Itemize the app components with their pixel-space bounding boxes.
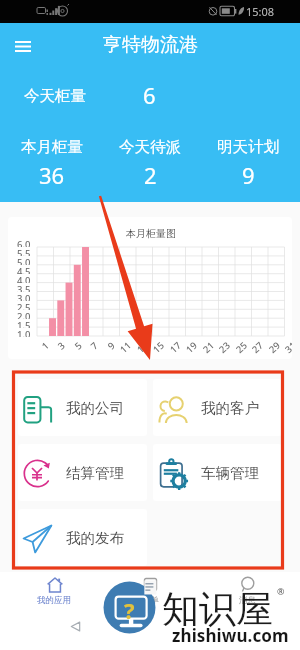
staticText: 订单 bbox=[142, 595, 159, 606]
staticText: 知识屋 bbox=[162, 586, 273, 633]
staticText: 31 bbox=[282, 339, 292, 356]
staticText: 5 bbox=[72, 339, 85, 353]
staticText: 明天计划 bbox=[217, 137, 279, 157]
staticText: 亨特物流港 bbox=[103, 33, 198, 57]
other: Back bbox=[70, 621, 81, 632]
staticText: 21 bbox=[200, 339, 217, 356]
staticText: 6.0 bbox=[17, 238, 31, 247]
staticText: 15 bbox=[150, 339, 167, 356]
button[interactable]: 我的发布 bbox=[18, 509, 147, 566]
staticText: 23 bbox=[216, 339, 233, 356]
button[interactable]: Menu bbox=[6, 29, 40, 63]
button[interactable]: 消息 bbox=[204, 572, 290, 612]
staticText: 13 bbox=[134, 339, 151, 356]
staticText: 本月柜量 bbox=[21, 137, 83, 157]
staticText: 17 bbox=[167, 339, 184, 356]
button[interactable]: 订单 bbox=[107, 572, 193, 612]
staticText: ? bbox=[124, 595, 135, 625]
staticText: 19 bbox=[183, 339, 200, 356]
staticText: 3 bbox=[55, 339, 68, 353]
staticText: zhishiwu.com bbox=[172, 624, 289, 647]
button[interactable]: 车辆管理 bbox=[153, 444, 282, 501]
staticText: 5.5 bbox=[17, 247, 31, 256]
staticText: 本月柜量图 bbox=[126, 227, 176, 240]
staticText: 今天柜量 bbox=[24, 86, 86, 106]
button[interactable]: 我的应用 bbox=[11, 572, 97, 612]
staticText: 消息 bbox=[239, 595, 256, 606]
staticText: 27 bbox=[249, 339, 266, 356]
staticText: 今天待派 bbox=[119, 137, 181, 157]
staticText: 2.5 bbox=[17, 301, 31, 310]
staticText: 7 bbox=[88, 339, 101, 353]
staticText: 11 bbox=[117, 339, 134, 356]
staticText: 2 bbox=[144, 160, 157, 190]
staticText: 1 bbox=[39, 339, 52, 353]
staticText: 36 bbox=[39, 160, 65, 190]
staticText: 我的公司 bbox=[66, 399, 124, 417]
staticText: 我的应用 bbox=[37, 595, 71, 606]
button[interactable]: 结算管理 bbox=[18, 444, 147, 501]
staticText: 1.5 bbox=[17, 319, 31, 328]
staticText: 4.0 bbox=[17, 274, 31, 283]
staticText: ® bbox=[277, 585, 285, 597]
staticText: 车辆管理 bbox=[201, 464, 259, 482]
staticText: 9 bbox=[105, 339, 118, 353]
staticText: 25 bbox=[233, 339, 250, 356]
staticText: 2.0 bbox=[17, 310, 31, 319]
button[interactable]: 我的客户 bbox=[153, 379, 282, 436]
staticText: 15:08 bbox=[246, 4, 275, 19]
staticText: 6 bbox=[143, 80, 156, 110]
staticText: 9 bbox=[242, 160, 255, 190]
staticText: 我的发布 bbox=[66, 529, 124, 547]
staticText: 29 bbox=[266, 339, 283, 356]
staticText: 1.0 bbox=[17, 328, 31, 337]
staticText: 4.5 bbox=[17, 265, 31, 274]
button[interactable]: 我的公司 bbox=[18, 379, 147, 436]
staticText: 我的客户 bbox=[201, 399, 259, 417]
staticText: 3.0 bbox=[17, 292, 31, 301]
staticText: 5.0 bbox=[17, 256, 31, 265]
staticText: 3.5 bbox=[17, 283, 31, 292]
staticText: 结算管理 bbox=[66, 464, 124, 482]
